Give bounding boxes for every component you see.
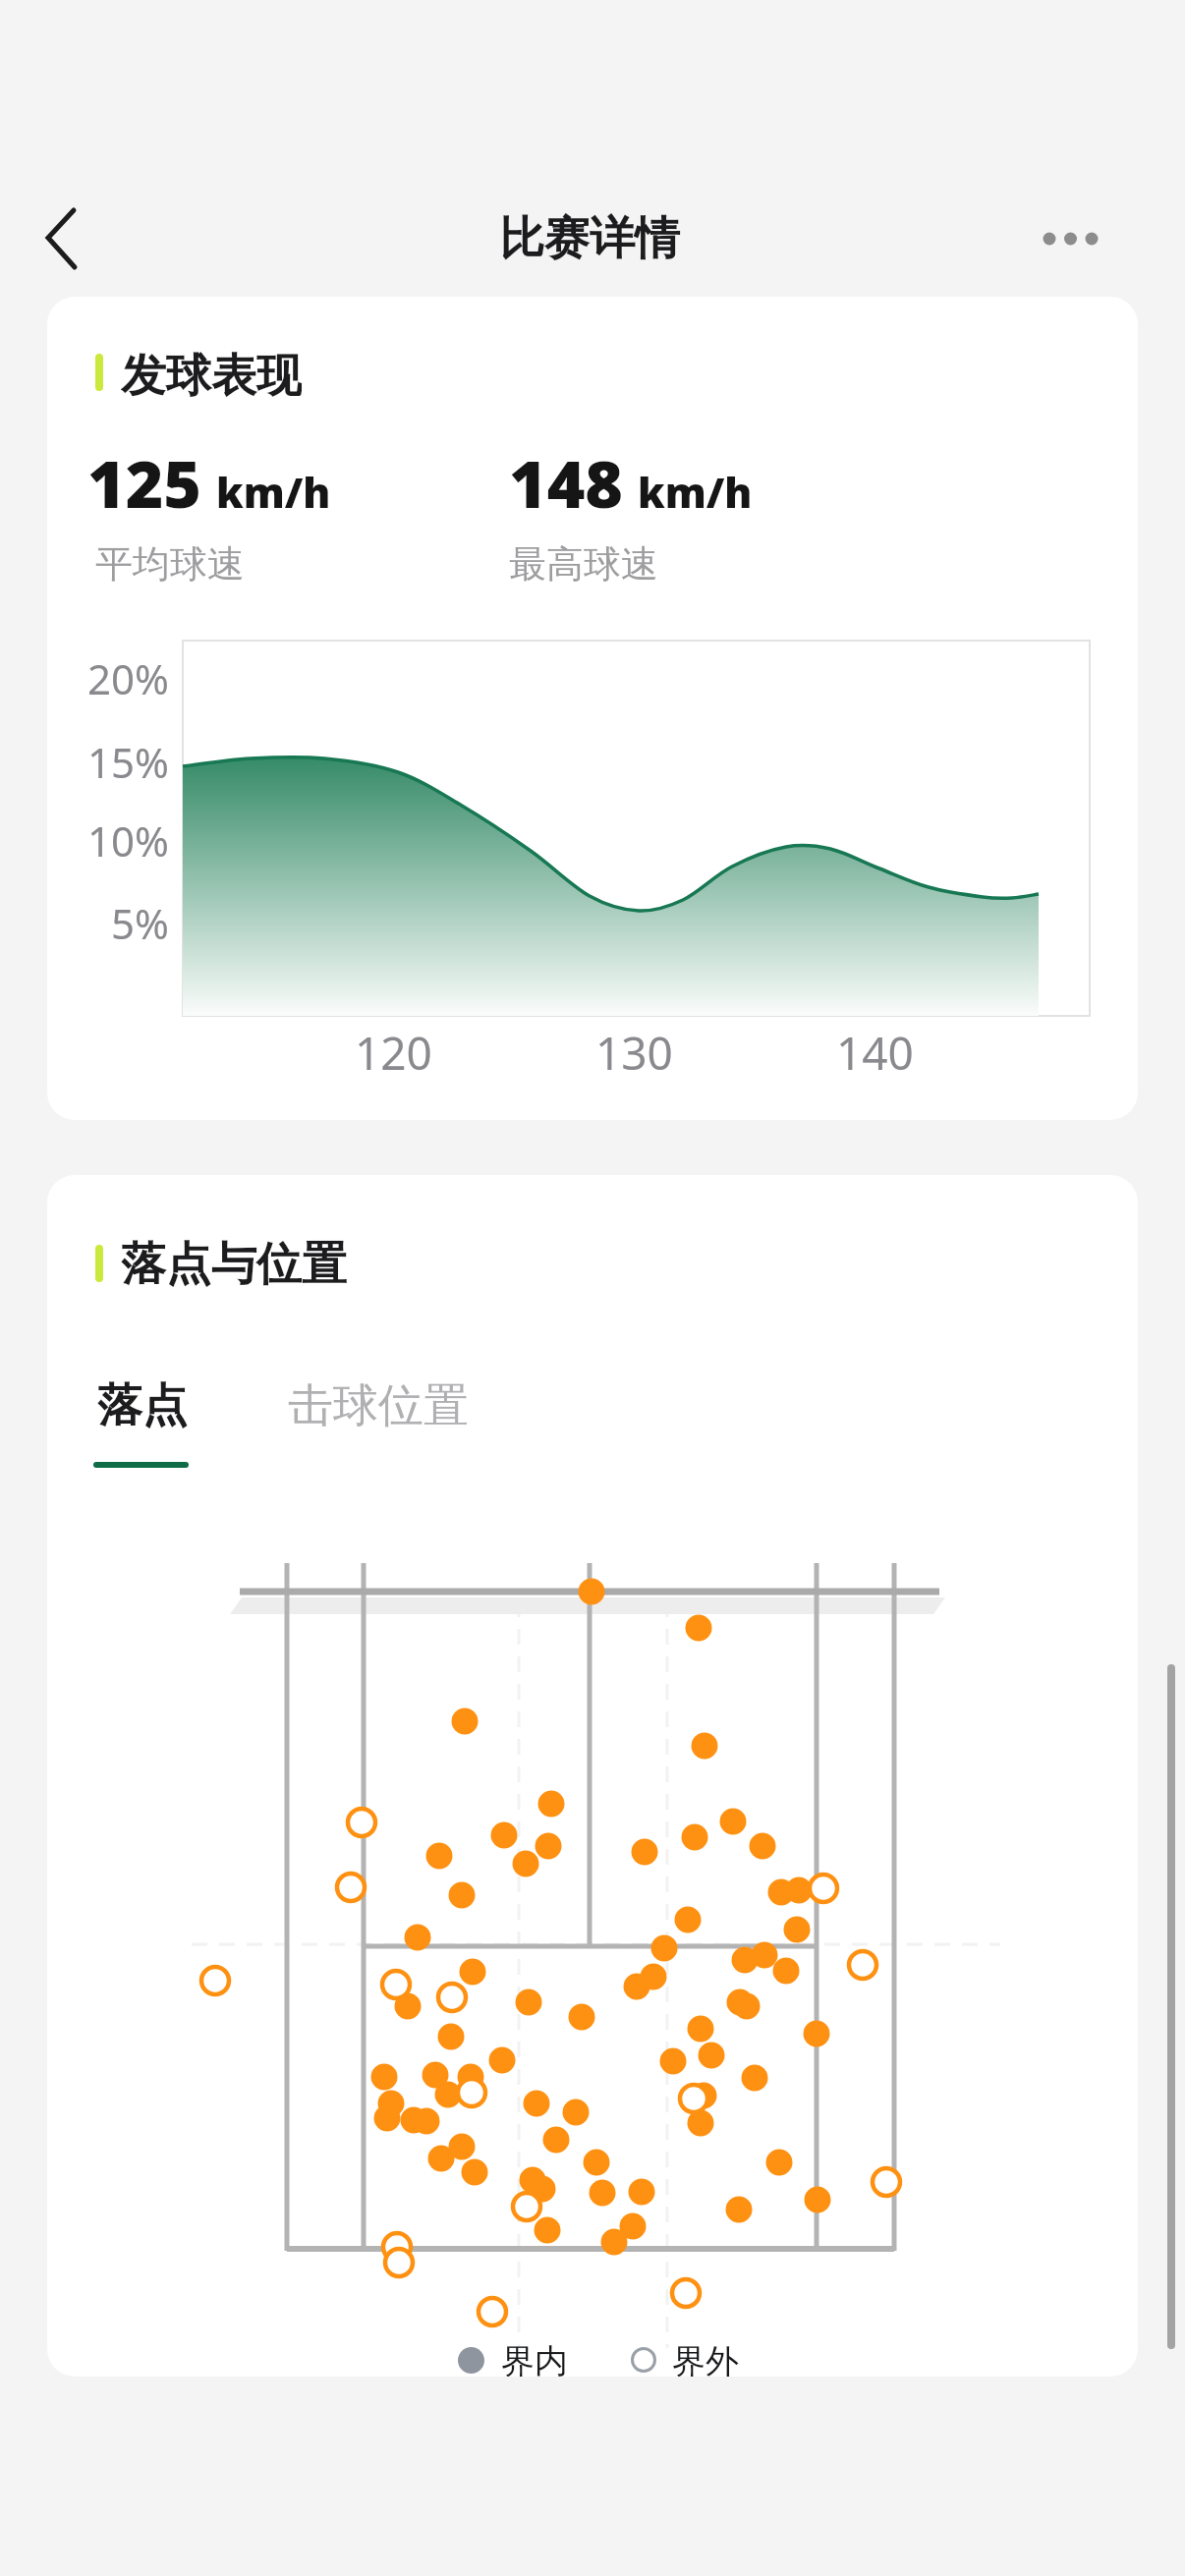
staticText: 落点 — [97, 1377, 188, 1434]
staticText: 120 — [355, 1022, 432, 1081]
staticText: 148 — [509, 438, 624, 527]
staticText: 最高球速 — [509, 540, 658, 588]
staticText: 界外 — [672, 2340, 739, 2377]
staticText: km/h — [638, 464, 753, 520]
staticText: km/h — [216, 464, 331, 520]
button[interactable] — [1042, 214, 1132, 263]
staticText: 20% — [87, 650, 169, 705]
staticText: 15% — [87, 734, 169, 789]
button[interactable]: 落点 — [93, 1372, 192, 1440]
staticText: 5% — [111, 895, 169, 950]
staticText: 界内 — [501, 2340, 568, 2377]
staticText: 125 — [87, 438, 202, 527]
staticText: 比赛详情 — [499, 210, 680, 267]
staticText: 10% — [87, 812, 169, 868]
button[interactable]: 击球位置 — [285, 1372, 472, 1440]
staticText: 落点与位置 — [121, 1236, 347, 1287]
button[interactable] — [28, 208, 96, 267]
staticText: 击球位置 — [288, 1377, 469, 1434]
staticText: 140 — [836, 1022, 914, 1081]
staticText: 130 — [595, 1022, 673, 1081]
staticText: 平均球速 — [95, 540, 245, 588]
staticText: 发球表现 — [121, 348, 302, 399]
